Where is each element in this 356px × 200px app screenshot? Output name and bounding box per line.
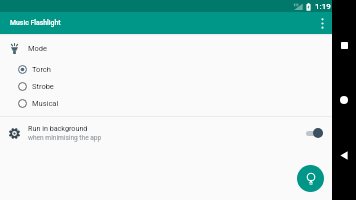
staticText: 1:19 [315, 2, 331, 11]
button[interactable]: Musical [0, 95, 332, 112]
button[interactable]: Toggle flashlight [297, 165, 324, 192]
button[interactable]: Torch [0, 61, 332, 78]
staticText: Strobe [32, 82, 54, 91]
staticText: Mode [28, 44, 48, 53]
staticText: Run in background [28, 124, 88, 132]
button[interactable]: Back [337, 148, 351, 162]
staticText: Musical [32, 99, 59, 108]
button[interactable]: More options [312, 12, 332, 34]
button[interactable]: Home [337, 93, 351, 107]
staticText: Music Flashlight [10, 19, 61, 27]
staticText: Torch [32, 65, 51, 74]
staticText: when minimising the app [28, 134, 102, 142]
button[interactable]: Recents [337, 38, 351, 52]
button[interactable]: Strobe [0, 78, 332, 95]
button[interactable]: Run in background [0, 117, 332, 149]
